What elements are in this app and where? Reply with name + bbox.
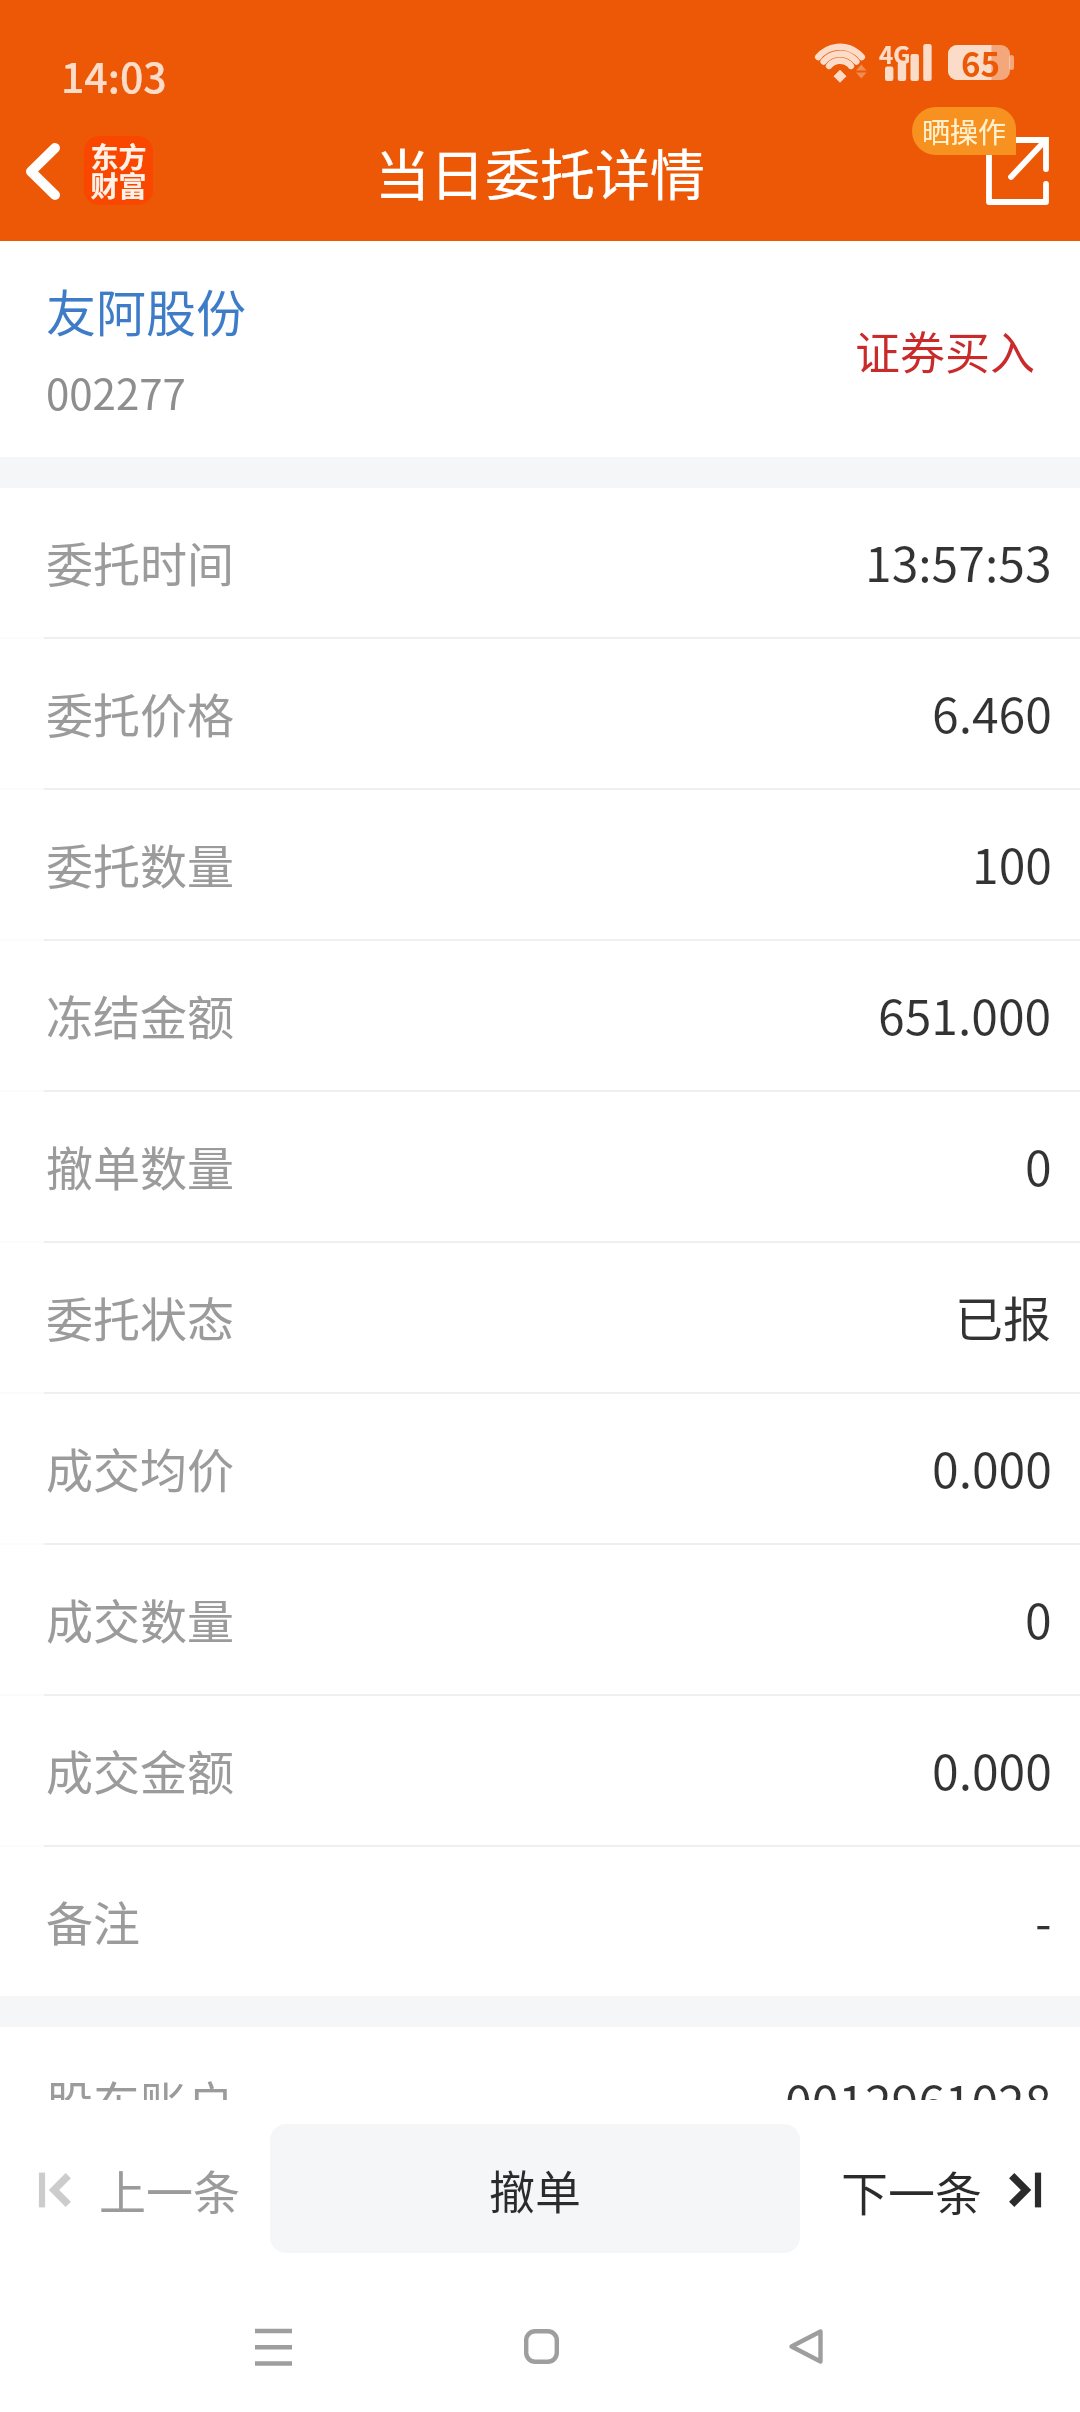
staticText: 备注 <box>46 1886 140 1954</box>
staticText: 0 <box>1025 1130 1052 1200</box>
staticText: - <box>1035 1885 1052 1955</box>
button[interactable]: 上一条 <box>10 2123 264 2253</box>
staticText: 委托价格 <box>46 678 234 746</box>
button[interactable]: 撤单 <box>270 2124 800 2253</box>
staticText: 0012961028 <box>785 2065 1052 2135</box>
button[interactable]: Back <box>2 116 84 226</box>
button[interactable]: 成交均价 <box>0 1394 1080 1543</box>
button[interactable]: Share <box>964 111 1068 231</box>
staticText: 0.000 <box>932 1734 1052 1804</box>
button[interactable]: 股东账户 <box>0 2027 1080 2176</box>
staticText: 13:57:53 <box>865 526 1052 596</box>
staticText: 4G <box>879 36 911 71</box>
button[interactable]: 委托状态 <box>0 1243 1080 1392</box>
staticText: 成交均价 <box>46 1433 234 1501</box>
button[interactable]: 委托数量 <box>0 790 1080 939</box>
staticText: 当日委托详情 <box>375 131 706 211</box>
staticText: 成交数量 <box>46 1584 234 1652</box>
button[interactable]: Home <box>461 2270 621 2412</box>
staticText: 已报 <box>955 1281 1052 1351</box>
staticText: 14:03 <box>61 45 167 104</box>
staticText: 6.460 <box>932 677 1052 747</box>
button[interactable]: East Money home <box>84 136 153 205</box>
button[interactable]: 成交数量 <box>0 1545 1080 1694</box>
staticText: 东方 财富 <box>90 136 147 205</box>
staticText: 委托时间 <box>46 527 234 595</box>
staticText: 冻结金额 <box>46 980 234 1048</box>
button[interactable]: 备注 <box>0 1847 1080 1996</box>
staticText: 撤单数量 <box>46 1131 234 1199</box>
button[interactable]: 成交金额 <box>0 1696 1080 1845</box>
staticText: 委托数量 <box>46 829 234 897</box>
staticText: 100 <box>972 828 1052 898</box>
button[interactable]: Back <box>726 2270 886 2412</box>
button[interactable]: Recent apps <box>193 2271 353 2412</box>
staticText: 委托状态 <box>46 1282 234 1350</box>
staticText: 65 <box>961 39 1000 87</box>
staticText: 证券买入 <box>855 318 1036 383</box>
staticText: 友阿股份 <box>46 274 246 346</box>
button[interactable]: 下一条 <box>817 2123 1070 2253</box>
staticText: 撤单 <box>489 2156 581 2223</box>
button[interactable]: 委托时间 <box>0 488 1080 637</box>
button[interactable]: 冻结金额 <box>0 941 1080 1090</box>
staticText: 成交金额 <box>46 1735 234 1803</box>
staticText: 0.000 <box>932 1432 1052 1502</box>
staticText: 651.000 <box>878 979 1052 1049</box>
staticText: 0 <box>1025 1583 1052 1653</box>
button[interactable]: 委托价格 <box>0 639 1080 788</box>
staticText: 股东账户 <box>46 2066 234 2134</box>
staticText: 上一条 <box>99 2155 240 2223</box>
staticText: 002277 <box>46 361 186 422</box>
staticText: 下一条 <box>841 2156 982 2224</box>
button[interactable]: 撤单数量 <box>0 1092 1080 1241</box>
staticText: 晒操作 <box>922 111 1007 152</box>
